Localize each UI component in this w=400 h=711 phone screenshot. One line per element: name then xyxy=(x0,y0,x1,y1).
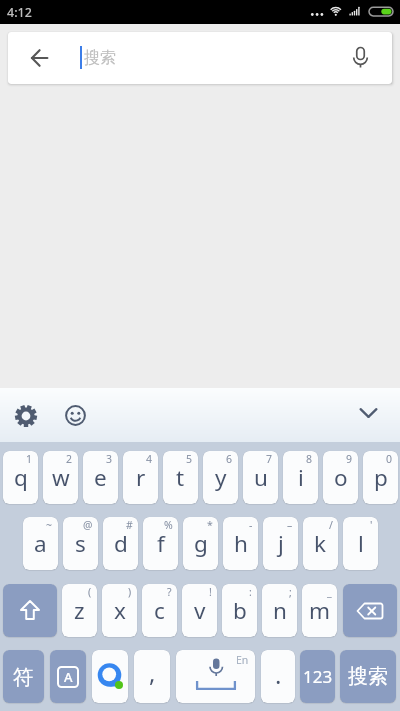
staticText: t xyxy=(176,462,185,493)
button[interactable]: e xyxy=(83,451,118,504)
button[interactable]: i xyxy=(283,451,318,504)
staticText: x xyxy=(114,595,126,626)
staticText: k xyxy=(314,528,327,559)
button[interactable] xyxy=(10,400,41,431)
staticText: j xyxy=(278,528,284,559)
staticText: - xyxy=(249,518,253,532)
button[interactable]: g xyxy=(183,517,218,570)
button[interactable]: n xyxy=(262,584,297,637)
staticText: o xyxy=(334,462,348,493)
button[interactable] xyxy=(343,584,397,637)
staticText: 符 xyxy=(13,664,34,690)
button[interactable]: 123 xyxy=(300,650,335,703)
button[interactable]: a xyxy=(23,517,58,570)
staticText: ~ xyxy=(46,518,53,532)
staticText: @ xyxy=(83,518,93,532)
button[interactable] xyxy=(3,584,57,637)
staticText: ? xyxy=(167,585,172,599)
staticText: a xyxy=(34,528,47,559)
button[interactable]: x xyxy=(102,584,137,637)
staticText: 3 xyxy=(106,452,113,466)
button[interactable]: w xyxy=(43,451,78,504)
staticText: w xyxy=(52,462,70,493)
staticText: p xyxy=(374,462,388,493)
staticText: 123 xyxy=(303,665,333,688)
staticText: i xyxy=(298,462,304,493)
button[interactable] xyxy=(352,397,384,429)
staticText: ! xyxy=(209,585,212,599)
staticText: : xyxy=(249,585,252,599)
button[interactable]: b xyxy=(222,584,257,637)
staticText: * xyxy=(207,518,213,532)
staticText: 7 xyxy=(266,452,273,466)
button[interactable]: c xyxy=(142,584,177,637)
button[interactable]: l xyxy=(343,517,378,570)
staticText: 8 xyxy=(306,452,313,466)
button[interactable]: 符 xyxy=(3,650,44,703)
staticText: % xyxy=(164,518,173,532)
button[interactable]: En xyxy=(176,650,255,703)
staticText: h xyxy=(234,528,248,559)
staticText: ) xyxy=(128,585,132,599)
staticText: 4 xyxy=(146,452,153,466)
button[interactable]: 搜索 xyxy=(8,32,392,84)
staticText: A xyxy=(64,668,73,686)
button[interactable]: k xyxy=(303,517,338,570)
button[interactable]: . xyxy=(261,650,295,703)
button[interactable]: u xyxy=(243,451,278,504)
staticText: ; xyxy=(289,585,292,599)
staticText: 搜索 xyxy=(348,664,388,689)
button[interactable]: s xyxy=(63,517,98,570)
staticText: q xyxy=(14,462,28,493)
staticText: u xyxy=(254,462,268,493)
button[interactable]: z xyxy=(62,584,97,637)
button[interactable]: A xyxy=(50,650,86,703)
staticText: 搜索 xyxy=(84,48,116,68)
button[interactable]: v xyxy=(182,584,217,637)
button[interactable] xyxy=(60,400,91,431)
staticText: c xyxy=(154,595,165,626)
staticText: f xyxy=(157,528,165,559)
staticText: En xyxy=(236,653,249,667)
staticText: 0 xyxy=(386,452,393,466)
button[interactable]: p xyxy=(363,451,398,504)
staticText: , xyxy=(149,656,156,689)
staticText: ( xyxy=(88,585,92,599)
staticText: . xyxy=(275,658,282,691)
staticText: 9 xyxy=(346,452,353,466)
staticText: n xyxy=(273,595,287,626)
button[interactable]: o xyxy=(323,451,358,504)
button[interactable] xyxy=(92,650,128,703)
staticText: z xyxy=(74,595,85,626)
staticText: # xyxy=(126,518,133,532)
button[interactable]: j xyxy=(263,517,298,570)
button[interactable]: y xyxy=(203,451,238,504)
button[interactable]: r xyxy=(123,451,158,504)
staticText: – xyxy=(287,518,293,532)
staticText: 6 xyxy=(226,452,233,466)
button[interactable]: h xyxy=(223,517,258,570)
staticText: b xyxy=(233,595,247,626)
staticText: 1 xyxy=(26,452,33,466)
staticText: d xyxy=(114,528,128,559)
staticText: 4:12 xyxy=(7,4,32,21)
staticText: ' xyxy=(370,518,373,532)
staticText: 2 xyxy=(66,452,73,466)
staticText: / xyxy=(329,518,333,532)
staticText: 5 xyxy=(186,452,193,466)
button[interactable]: t xyxy=(163,451,198,504)
staticText: y xyxy=(215,462,227,493)
staticText: v xyxy=(194,595,206,626)
button[interactable]: d xyxy=(103,517,138,570)
button[interactable]: , xyxy=(134,650,170,703)
staticText: m xyxy=(309,595,331,626)
staticText: g xyxy=(194,528,208,559)
button[interactable]: f xyxy=(143,517,178,570)
button[interactable]: m xyxy=(302,584,337,637)
staticText: _ xyxy=(327,585,332,599)
button[interactable]: q xyxy=(3,451,38,504)
staticText: s xyxy=(75,528,86,559)
staticText: e xyxy=(94,462,107,493)
button[interactable]: 搜索 xyxy=(340,650,396,703)
staticText: l xyxy=(358,528,364,559)
